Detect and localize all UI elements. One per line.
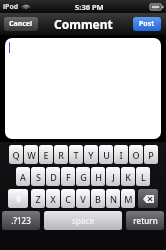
button[interactable]: P	[144, 145, 158, 164]
button[interactable]: X	[46, 189, 60, 208]
button[interactable]: Backspace	[138, 189, 158, 208]
staticText: P	[148, 149, 154, 161]
button[interactable]: Post	[133, 17, 161, 31]
staticText: V	[80, 193, 86, 205]
staticText: K	[125, 171, 131, 183]
button[interactable]: space	[44, 211, 122, 230]
button[interactable]: S	[31, 167, 45, 186]
staticText: Y	[88, 149, 94, 161]
button[interactable]: Y	[84, 145, 98, 164]
staticText: B	[95, 193, 101, 205]
button[interactable]: M	[121, 189, 135, 208]
button[interactable]: G	[76, 167, 90, 186]
staticText: Post	[139, 19, 155, 29]
button[interactable]: U	[99, 145, 113, 164]
button[interactable]: .?123	[2, 211, 40, 230]
button[interactable]	[5, 38, 161, 139]
staticText: space	[72, 215, 94, 226]
button[interactable]: E	[39, 145, 53, 164]
button[interactable]: O	[129, 145, 143, 164]
staticText: Q	[12, 149, 20, 161]
staticText: F	[66, 171, 71, 183]
staticText: M	[124, 193, 133, 205]
button[interactable]: D	[46, 167, 60, 186]
button[interactable]: J	[106, 167, 120, 186]
button[interactable]: N	[106, 189, 120, 208]
staticText: G	[80, 171, 87, 183]
button[interactable]: T	[69, 145, 83, 164]
staticText: return	[133, 215, 158, 226]
staticText: X	[50, 193, 56, 205]
button[interactable]: A	[16, 167, 30, 186]
button[interactable]: F	[61, 167, 75, 186]
button[interactable]: B	[91, 189, 105, 208]
staticText: Cancel	[9, 19, 33, 29]
button[interactable]: H	[91, 167, 105, 186]
staticText: E	[43, 149, 49, 161]
staticText: L	[141, 171, 146, 183]
staticText: 5:36 PM	[75, 2, 104, 12]
staticText: D	[50, 171, 57, 183]
button[interactable]: L	[136, 167, 150, 186]
button[interactable]: return	[126, 211, 164, 230]
staticText: Z	[35, 193, 41, 205]
button[interactable]: C	[61, 189, 75, 208]
staticText: S	[36, 171, 41, 183]
button[interactable]: K	[121, 167, 135, 186]
staticText: Comment	[54, 16, 113, 32]
button[interactable]: I	[114, 145, 128, 164]
button[interactable]: V	[76, 189, 90, 208]
button[interactable]: Q	[9, 145, 23, 164]
staticText: .?123	[11, 215, 31, 226]
button[interactable]: R	[54, 145, 68, 164]
staticText: J	[112, 171, 115, 183]
staticText: C	[65, 193, 71, 205]
staticText: iPod	[3, 2, 19, 12]
staticText: H	[95, 171, 102, 183]
staticText: T	[73, 149, 79, 161]
staticText: N	[110, 193, 117, 205]
staticText: A	[20, 171, 26, 183]
staticText: R	[58, 149, 64, 161]
button[interactable]: Shift	[8, 189, 28, 208]
button[interactable]: Z	[31, 189, 45, 208]
staticText: O	[132, 149, 140, 161]
button[interactable]: W	[24, 145, 38, 164]
staticText: U	[103, 149, 110, 161]
staticText: I	[119, 149, 123, 161]
staticText: W	[27, 149, 36, 161]
button[interactable]: Cancel	[4, 17, 38, 31]
